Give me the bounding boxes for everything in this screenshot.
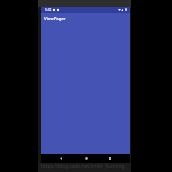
staticText: https://blog.csdn.net/smile_Running [41, 163, 125, 170]
staticText: 5:32 [45, 8, 52, 12]
staticText: ViewPager [44, 15, 66, 21]
button[interactable]: Home [79, 154, 93, 163]
button[interactable]: Back [54, 154, 68, 163]
button[interactable]: Recent apps [103, 154, 117, 163]
